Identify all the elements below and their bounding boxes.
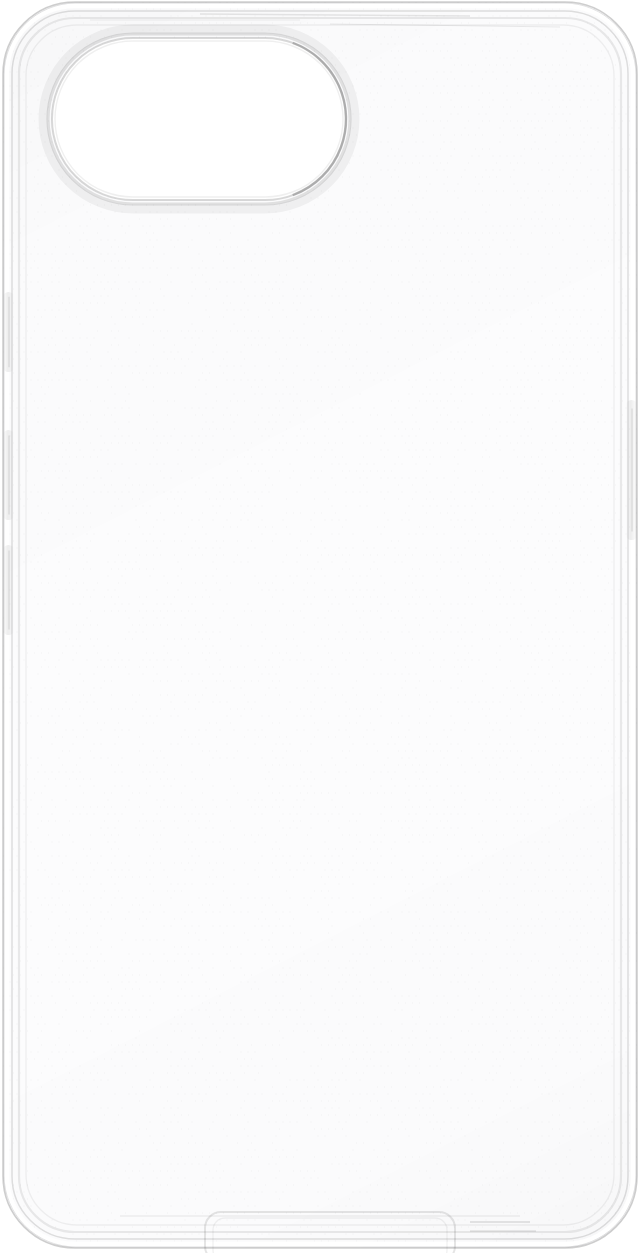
button[interactable]: Clear phone case product photo (0, 0, 640, 1253)
